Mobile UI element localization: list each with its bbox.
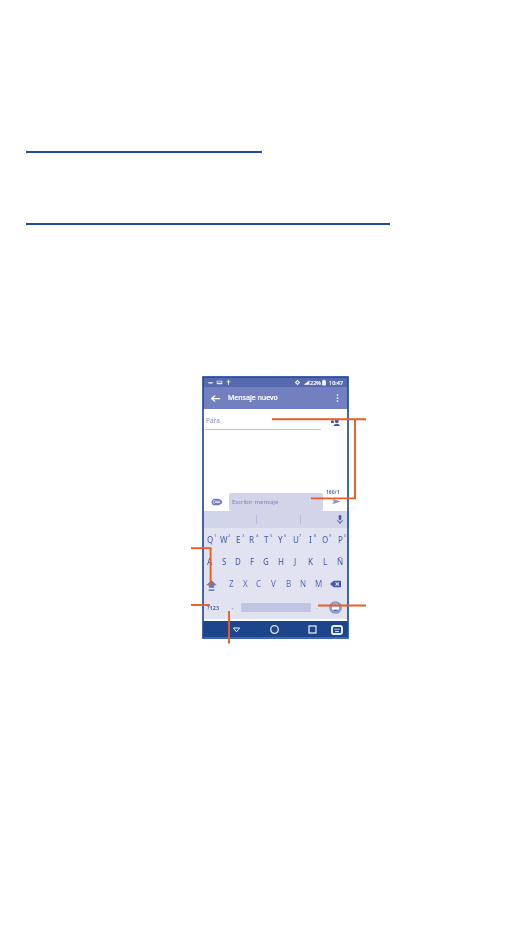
button[interactable]: T [259,528,273,550]
staticText: J [294,556,297,567]
button[interactable]: Emoji [323,595,348,619]
staticText: Y [278,534,283,545]
staticText: ?123 [207,604,220,611]
button[interactable]: D [231,550,245,572]
button[interactable]: Back [208,391,222,405]
button[interactable]: U [288,528,303,550]
button[interactable]: More options [330,391,344,405]
button[interactable]: E [231,528,245,550]
button[interactable]: Add contact [329,416,342,429]
button[interactable]: V [266,572,281,595]
button[interactable]: L [318,550,333,572]
staticText: B [286,578,292,589]
button[interactable]: Send [330,495,343,508]
staticText: A [207,556,213,567]
staticText: . [316,603,318,611]
staticText: U [293,534,299,545]
staticText: G [263,556,269,567]
staticText: P [338,534,343,545]
staticText: Mensaje nuevo [228,393,278,403]
staticText: H [278,556,284,567]
button[interactable]: Comma [224,595,241,619]
staticText: M [315,578,323,589]
staticText: Para [206,416,220,425]
button[interactable]: W [217,528,231,550]
staticText: 160/1 [326,489,340,496]
button[interactable]: J [288,550,303,572]
staticText: 3 [242,533,245,538]
staticText: F [250,556,255,567]
button[interactable]: Z [224,572,238,595]
button[interactable]: Keyboard [330,623,343,636]
button[interactable]: ?123 [203,595,224,619]
button[interactable]: Para [203,409,348,429]
button[interactable]: Home [268,623,281,636]
button[interactable]: M [311,572,326,595]
staticText: Z [229,578,234,589]
button[interactable]: C [252,572,266,595]
staticText: E [236,534,241,545]
staticText: Ñ [337,556,344,567]
staticText: K [308,556,314,567]
button[interactable]: N [296,572,311,595]
staticText: D [235,556,241,567]
button[interactable]: Q [203,528,217,550]
staticText: 9 [329,533,332,538]
staticText: 2 [228,533,231,538]
staticText: Q [207,534,214,545]
button[interactable]: Voice input [333,513,346,526]
button[interactable]: X [238,572,252,595]
staticText: V [271,578,276,589]
staticText: S [222,556,227,567]
staticText: , [232,603,234,611]
staticText: 7 [299,533,302,538]
button[interactable]: P [333,528,348,550]
staticText: I [309,534,312,545]
staticText: N [300,578,307,589]
button[interactable]: F [245,550,259,572]
button[interactable]: Recents [306,623,319,636]
staticText: R [249,534,255,545]
staticText: 6 [284,533,287,538]
button[interactable]: Ñ [333,550,348,572]
staticText: 8 [314,533,317,538]
staticText: 5 [270,533,273,538]
button[interactable]: B [281,572,296,595]
button[interactable]: I [303,528,318,550]
button[interactable]: A [203,550,217,572]
button[interactable]: Escribir mensaje [229,493,323,511]
staticText: Escribir mensaje [232,498,279,506]
button[interactable]: O [318,528,333,550]
staticText: 4 [256,533,259,538]
staticText: 1 [214,533,217,538]
staticText: X [243,578,248,589]
staticText: 10:47 [329,379,344,386]
staticText: 22% [310,379,321,386]
button[interactable]: R [245,528,259,550]
button[interactable]: Back [230,623,243,636]
staticText: C [256,578,262,589]
button[interactable]: G [259,550,273,572]
staticText: O [322,534,329,545]
staticText: T [264,534,269,545]
button[interactable]: S [217,550,231,572]
button[interactable]: Attach [211,496,223,508]
button[interactable]: Shift [203,572,224,595]
button[interactable]: K [303,550,318,572]
button[interactable]: Backspace [326,572,348,595]
staticText: 0 [344,533,347,538]
button[interactable]: H [273,550,288,572]
button[interactable]: Y [273,528,288,550]
staticText: L [323,556,328,567]
staticText: W [220,534,228,545]
button[interactable]: Period [311,595,323,619]
